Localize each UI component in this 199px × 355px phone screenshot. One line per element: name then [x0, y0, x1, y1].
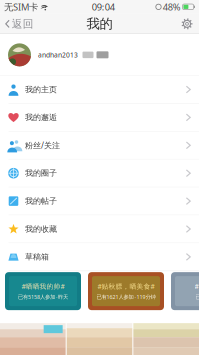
- staticText: 已有1621人参加 · 119分钟: [96, 293, 155, 300]
- staticText: 我的邂逅: [25, 112, 57, 122]
- staticText: 粉丝/关注: [25, 140, 60, 151]
- staticText: 我的收藏: [25, 224, 57, 234]
- button[interactable]: 粉丝/关注: [0, 132, 199, 159]
- staticText: 无SIM卡: [4, 1, 38, 13]
- button[interactable]: #晒晒我的帅#: [5, 272, 81, 310]
- button[interactable]: 照片: [0, 323, 66, 355]
- staticText: #晒晒我的帅#: [21, 282, 64, 291]
- button[interactable]: #孔，要#: [171, 272, 199, 310]
- staticText: 已有1035人: [195, 293, 199, 300]
- button[interactable]: 我的主页: [0, 76, 199, 104]
- staticText: 09:04: [92, 1, 115, 13]
- staticText: 已有5158人参加 · 昨天: [18, 293, 68, 300]
- button[interactable]: 返回: [0, 14, 40, 34]
- staticText: 我的: [86, 16, 112, 32]
- button[interactable]: 我的邂逅: [0, 104, 199, 132]
- staticText: #贴秋膘，晒美食#: [97, 282, 154, 291]
- button[interactable]: 我的帖子: [0, 187, 199, 215]
- staticText: 我的主页: [25, 85, 57, 94]
- button[interactable]: 我的圈子: [0, 159, 199, 187]
- button[interactable]: 草稿箱: [0, 243, 199, 271]
- staticText: 我的圈子: [25, 168, 57, 178]
- button[interactable]: andhan2013: [0, 34, 199, 76]
- staticText: andhan2013: [38, 50, 78, 59]
- staticText: 48%: [163, 1, 181, 13]
- staticText: 我的帖子: [25, 196, 57, 206]
- button[interactable]: 照片: [133, 323, 199, 355]
- button[interactable]: 我的收藏: [0, 215, 199, 243]
- staticText: 返回: [12, 17, 34, 30]
- staticText: #孔，要#: [194, 282, 199, 291]
- button[interactable]: 照片: [67, 323, 132, 355]
- staticText: 草稿箱: [25, 252, 49, 262]
- button[interactable]: #贴秋膘，晒美食#: [88, 272, 164, 310]
- button[interactable]: 设置: [175, 14, 199, 34]
